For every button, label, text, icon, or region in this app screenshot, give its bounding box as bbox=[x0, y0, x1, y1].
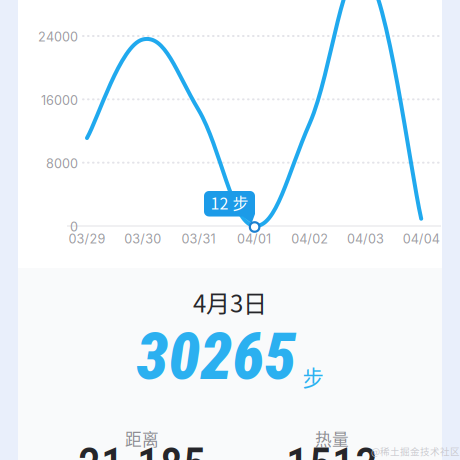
staticText: 8000 bbox=[46, 156, 78, 171]
staticText: 1513 bbox=[286, 438, 378, 460]
staticText: 24000 bbox=[38, 29, 78, 45]
staticText: 热量 bbox=[315, 426, 349, 450]
staticText: 03/31 bbox=[181, 231, 215, 247]
staticText: 03/30 bbox=[124, 231, 161, 247]
staticText: 04/02 bbox=[291, 231, 328, 247]
staticText: 04/04 bbox=[403, 231, 440, 247]
staticText: 16000 bbox=[41, 93, 78, 108]
staticText: 4月3日 bbox=[193, 285, 267, 319]
staticText: @稀土掘金技术社区 bbox=[371, 444, 460, 458]
staticText: 0 bbox=[70, 219, 78, 235]
staticText: 04/01 bbox=[237, 231, 271, 247]
staticText: 步 bbox=[302, 362, 323, 392]
staticText: 距离 bbox=[125, 426, 159, 450]
staticText: 04/03 bbox=[347, 231, 384, 247]
staticText: 21.185 bbox=[78, 438, 206, 460]
staticText: 03/29 bbox=[68, 231, 105, 247]
staticText: 30265 bbox=[136, 319, 296, 394]
staticText: 12 步 bbox=[210, 191, 248, 214]
